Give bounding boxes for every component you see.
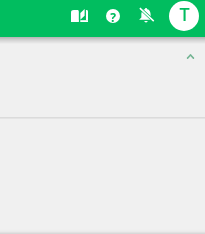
staticText: T <box>179 2 190 27</box>
button[interactable]: Help <box>96 0 129 31</box>
button[interactable]: Notifications off <box>129 0 162 31</box>
button[interactable]: Account <box>169 1 199 31</box>
button[interactable]: Collapse <box>183 49 197 63</box>
staticText: ? <box>110 9 116 23</box>
button[interactable]: Guide <box>63 0 96 31</box>
